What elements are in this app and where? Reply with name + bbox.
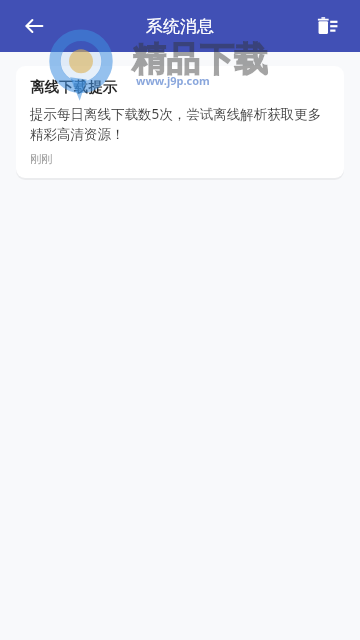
staticText: www.j9p.com	[136, 73, 210, 88]
button[interactable]: 离线下载提示	[16, 66, 344, 178]
staticText: 系统消息	[146, 16, 214, 37]
staticText: 提示每日离线下载数5次，尝试离线解析获取更多精彩高清资源！	[30, 105, 330, 143]
staticText: 精品下载	[132, 38, 268, 81]
staticText: 离线下载提示	[30, 78, 117, 96]
button[interactable]: Clear all messages	[308, 6, 348, 46]
button[interactable]: Back	[14, 6, 54, 46]
staticText: 刚刚	[30, 152, 52, 166]
